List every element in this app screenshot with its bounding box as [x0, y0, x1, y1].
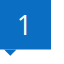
staticText: 1	[17, 7, 32, 42]
button[interactable]: 1	[0, 0, 51, 57]
